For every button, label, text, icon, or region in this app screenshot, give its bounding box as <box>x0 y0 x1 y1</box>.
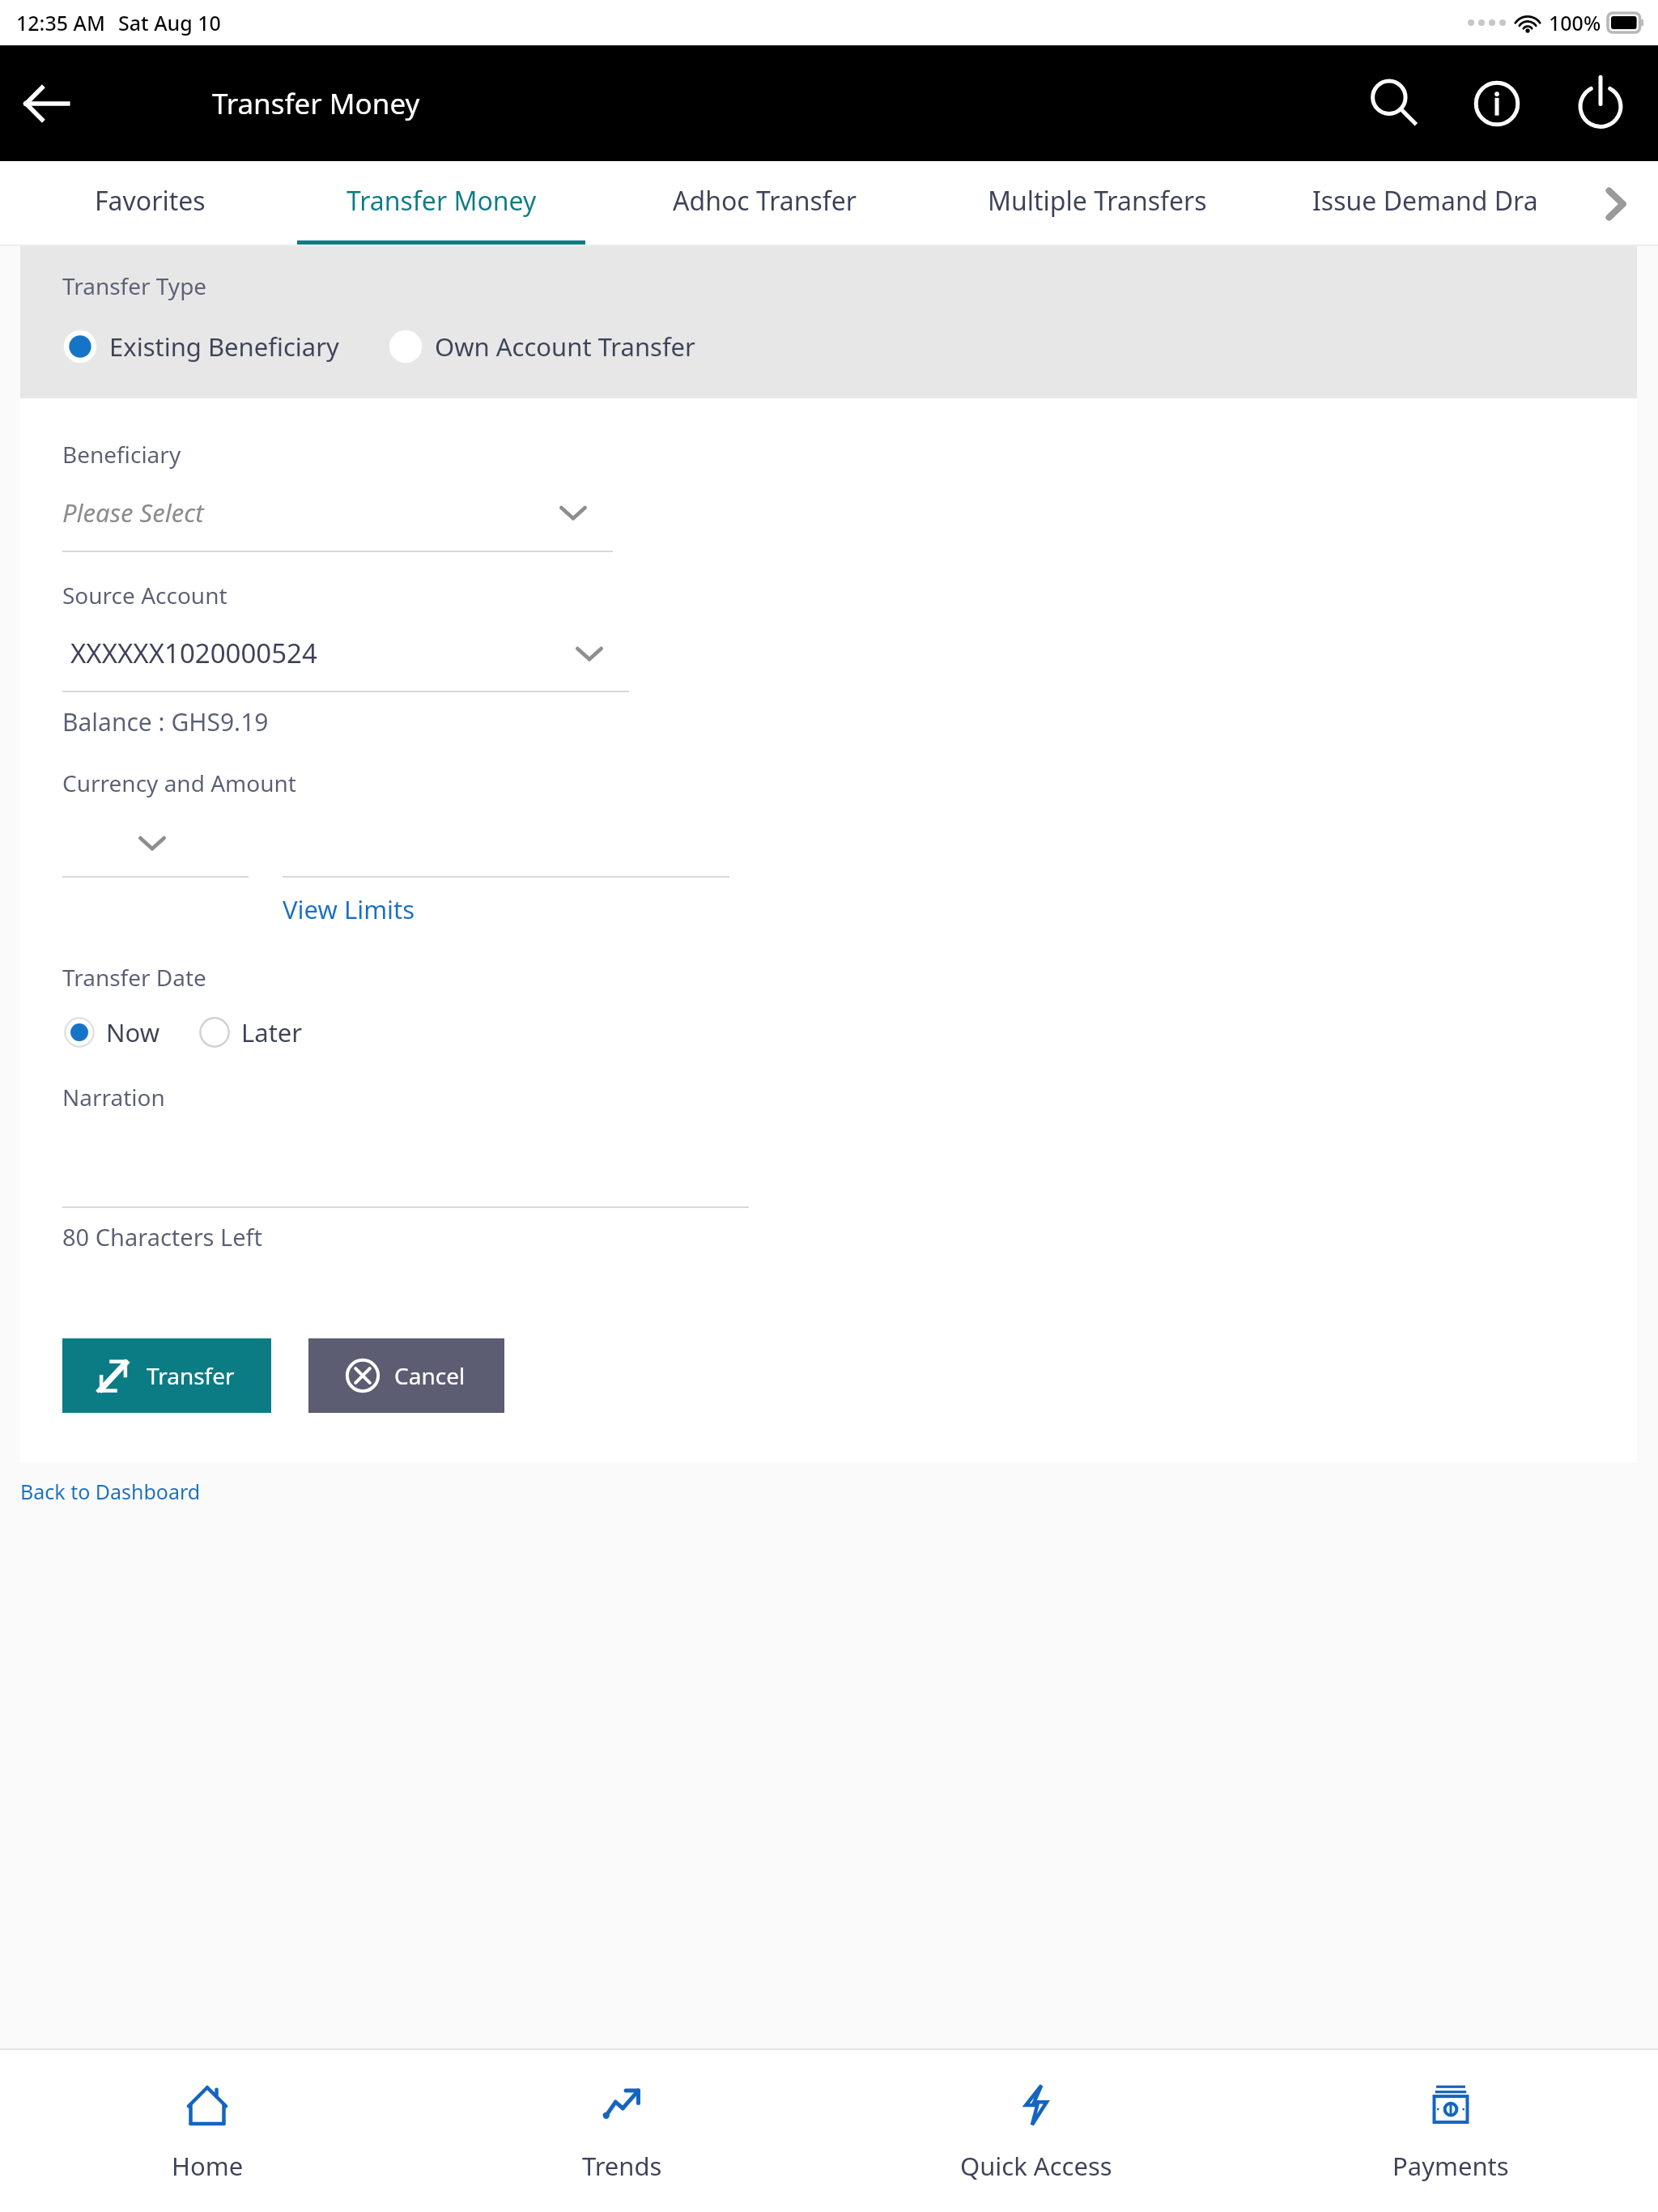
staticText: Please Select <box>62 496 555 530</box>
staticText: Transfer <box>147 1360 235 1391</box>
button[interactable]: XXXXXX1020000524 <box>62 635 629 671</box>
staticText: Narration <box>62 1082 165 1112</box>
button[interactable]: Now <box>62 1015 160 1049</box>
button[interactable] <box>62 821 249 865</box>
button[interactable]: Own Account Transfer <box>388 329 695 364</box>
button[interactable]: Please Select <box>62 496 613 530</box>
button[interactable]: Back <box>16 73 78 134</box>
button[interactable]: Adhoc Transfer <box>603 161 927 246</box>
button[interactable]: View Limits <box>283 892 415 926</box>
button[interactable]: Later <box>198 1015 303 1049</box>
button[interactable]: Trends <box>414 2050 829 2212</box>
staticText: Home <box>172 2149 244 2183</box>
button[interactable]: Favorites <box>20 161 279 246</box>
button[interactable]: Existing Beneficiary <box>62 329 339 364</box>
staticText: XXXXXX1020000524 <box>70 635 571 671</box>
staticText: Trends <box>582 2149 662 2183</box>
button[interactable]: Transfer <box>62 1338 271 1413</box>
staticText: Favorites <box>95 183 206 219</box>
staticText: Beneficiary <box>62 439 181 470</box>
staticText: Issue Demand Dra <box>1312 183 1538 219</box>
button[interactable]: Home <box>0 2050 414 2212</box>
staticText: Existing Beneficiary <box>109 330 339 364</box>
button[interactable]: Quick Access <box>829 2050 1243 2212</box>
staticText: Payments <box>1392 2149 1509 2183</box>
staticText: Later <box>241 1015 303 1049</box>
staticText: Balance : GHS9.19 <box>62 705 269 738</box>
staticText: Cancel <box>394 1360 466 1391</box>
button[interactable]: Search <box>1358 69 1428 138</box>
staticText: Transfer Money <box>346 183 537 219</box>
staticText: Source Account <box>62 580 227 610</box>
button[interactable]: Multiple Transfers <box>927 161 1267 246</box>
staticText: 80 Characters Left <box>62 1221 263 1253</box>
staticText: Sat Aug 10 <box>118 9 221 36</box>
button[interactable]: Issue Demand Dra <box>1267 161 1583 246</box>
staticText: 100% <box>1549 9 1601 36</box>
staticText: Multiple Transfers <box>988 183 1207 219</box>
staticText: Currency and Amount <box>62 768 296 798</box>
button[interactable]: Information <box>1462 69 1532 138</box>
staticText: Transfer Type <box>62 270 207 301</box>
button[interactable]: Transfer Money <box>279 161 603 246</box>
button[interactable]: More tabs <box>1593 177 1647 231</box>
staticText: Now <box>106 1015 160 1049</box>
staticText: Quick Access <box>960 2149 1112 2183</box>
staticText: 12:35 AM <box>16 9 105 36</box>
button[interactable]: Power off <box>1566 69 1635 138</box>
button[interactable]: Back to Dashboard <box>0 1478 201 1505</box>
staticText: Own Account Transfer <box>435 330 695 364</box>
button[interactable]: Cancel <box>308 1338 504 1413</box>
staticText: Adhoc Transfer <box>673 183 857 219</box>
staticText: Transfer Money <box>212 84 420 123</box>
staticText: Transfer Date <box>62 962 206 993</box>
button[interactable]: Payments <box>1243 2050 1658 2212</box>
